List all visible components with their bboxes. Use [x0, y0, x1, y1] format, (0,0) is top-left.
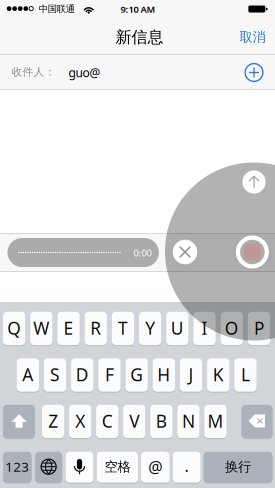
- staticText: Q: [7, 316, 21, 339]
- button[interactable]: 123: [3, 451, 32, 483]
- button[interactable]: Dictation: [66, 451, 93, 483]
- button[interactable]: M: [204, 404, 227, 439]
- button[interactable]: @: [141, 451, 170, 483]
- staticText: 新信息: [115, 27, 163, 47]
- staticText: 空格: [104, 458, 130, 475]
- button[interactable]: Cancel recording: [173, 240, 197, 264]
- button[interactable]: Q: [3, 311, 25, 346]
- button[interactable]: C: [96, 404, 118, 439]
- button[interactable]: I: [193, 311, 216, 346]
- button[interactable]: N: [177, 404, 199, 439]
- button[interactable]: S: [44, 358, 66, 392]
- staticText: R: [90, 316, 101, 339]
- staticText: S: [50, 363, 60, 386]
- button[interactable]: .: [173, 451, 200, 483]
- button[interactable]: Z: [42, 404, 64, 439]
- staticText: N: [182, 409, 195, 432]
- button[interactable]: Add recipient: [237, 55, 271, 90]
- staticText: J: [188, 363, 193, 386]
- button[interactable]: Shift: [3, 404, 35, 439]
- button[interactable]: J: [180, 358, 202, 392]
- staticText: L: [241, 363, 250, 386]
- button[interactable]: D: [71, 358, 93, 392]
- button[interactable]: H: [153, 358, 175, 392]
- staticText: guo@: [68, 64, 100, 80]
- staticText: Y: [145, 316, 155, 339]
- button[interactable]: R: [85, 311, 107, 346]
- button[interactable]: L: [234, 358, 257, 392]
- button[interactable]: G: [125, 358, 148, 392]
- staticText: W: [33, 316, 49, 339]
- staticText: U: [171, 316, 184, 339]
- button[interactable]: W: [30, 311, 52, 346]
- staticText: .: [185, 455, 189, 476]
- button[interactable]: X: [69, 404, 91, 439]
- staticText: I: [202, 316, 208, 339]
- staticText: 换行: [225, 458, 251, 475]
- button[interactable]: O: [221, 311, 243, 346]
- staticText: 123: [5, 458, 29, 475]
- button[interactable]: Stop recording: [236, 235, 269, 268]
- staticText: T: [118, 316, 128, 339]
- staticText: X: [75, 409, 85, 432]
- staticText: V: [129, 409, 139, 432]
- button[interactable]: U: [166, 311, 188, 346]
- staticText: P: [254, 316, 264, 339]
- staticText: 9:10 AM: [120, 3, 155, 15]
- button[interactable]: Next keyboard: [35, 451, 62, 483]
- staticText: 中国联通: [39, 3, 75, 15]
- staticText: D: [76, 363, 89, 386]
- button[interactable]: E: [57, 311, 80, 346]
- staticText: E: [63, 316, 73, 339]
- staticText: H: [157, 363, 170, 386]
- staticText: @: [148, 456, 162, 477]
- staticText: O: [225, 316, 239, 339]
- staticText: 0:00: [133, 247, 151, 259]
- button[interactable]: V: [123, 404, 145, 439]
- button[interactable]: Delete: [241, 404, 272, 439]
- staticText: C: [102, 409, 113, 432]
- button[interactable]: Send: [242, 170, 266, 194]
- button[interactable]: 换行: [204, 451, 272, 483]
- button[interactable]: P: [248, 311, 270, 346]
- button[interactable]: B: [150, 404, 172, 439]
- staticText: Z: [48, 409, 58, 432]
- staticText: M: [207, 409, 223, 432]
- button[interactable]: 空格: [97, 451, 138, 483]
- staticText: K: [213, 363, 224, 386]
- button[interactable]: F: [98, 358, 121, 392]
- staticText: 取消: [239, 29, 265, 45]
- staticText: 收件人：: [11, 65, 55, 78]
- button[interactable]: 取消: [230, 18, 274, 56]
- staticText: F: [105, 363, 114, 386]
- staticText: A: [22, 363, 33, 386]
- staticText: G: [130, 363, 143, 386]
- button[interactable]: T: [112, 311, 134, 346]
- button[interactable]: Y: [139, 311, 161, 346]
- staticText: B: [156, 409, 167, 432]
- button[interactable]: A: [17, 358, 39, 392]
- button[interactable]: K: [207, 358, 229, 392]
